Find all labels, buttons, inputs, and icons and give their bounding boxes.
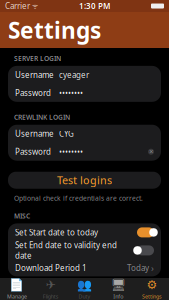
button[interactable]: Info bbox=[101, 278, 135, 300]
staticText: › bbox=[149, 262, 154, 274]
staticText: Flights bbox=[43, 293, 59, 300]
staticText: Settings bbox=[142, 293, 162, 300]
button[interactable]: Username bbox=[8, 125, 161, 143]
staticText: MISC bbox=[14, 212, 30, 220]
staticText: CREWLINK LOGIN bbox=[14, 113, 70, 122]
staticText: ᯤ bbox=[30, 2, 38, 10]
staticText: CYG bbox=[59, 128, 74, 139]
staticText: Username bbox=[15, 69, 54, 80]
staticText: 👥 bbox=[77, 278, 92, 292]
staticText: •••••••• bbox=[59, 146, 83, 157]
staticText: Today bbox=[127, 263, 149, 273]
staticText: ✈ bbox=[46, 278, 56, 292]
staticText: 🖥 bbox=[111, 278, 126, 292]
staticText: Test logins bbox=[57, 173, 112, 187]
button[interactable]: Test logins bbox=[8, 172, 161, 189]
button[interactable]: Set End date to validity end date bbox=[8, 241, 161, 259]
button[interactable]: Duty bbox=[68, 278, 101, 300]
staticText: 1:30 PM bbox=[79, 1, 110, 11]
staticText: Info bbox=[113, 293, 123, 300]
staticText: Settings bbox=[8, 15, 101, 45]
staticText: •••••••• bbox=[59, 87, 83, 98]
button[interactable]: Manage bbox=[0, 278, 34, 300]
staticText: ⚙ bbox=[147, 278, 158, 292]
staticText: Carrier bbox=[5, 1, 30, 11]
button[interactable]: Password bbox=[8, 143, 161, 161]
button[interactable]: Settings bbox=[135, 278, 169, 300]
staticText: Username bbox=[15, 128, 54, 139]
button[interactable]: Download Period 1 bbox=[8, 259, 161, 276]
staticText: 📄 bbox=[9, 278, 24, 292]
staticText: Password bbox=[15, 87, 51, 98]
staticText: Download Period 1 bbox=[15, 263, 87, 273]
staticText: cyeager bbox=[59, 69, 89, 80]
staticText: Set End date to validity end date bbox=[15, 240, 117, 261]
staticText: Duty bbox=[78, 293, 90, 300]
staticText: Optional check if credentials are correc… bbox=[14, 194, 143, 203]
staticText: ✕ bbox=[149, 149, 153, 155]
staticText: Set Start date to today bbox=[15, 227, 98, 238]
button[interactable]: Flights bbox=[34, 278, 68, 300]
button[interactable]: Set Start date to today bbox=[8, 223, 161, 241]
staticText: Manage bbox=[7, 293, 27, 300]
staticText: Password bbox=[15, 146, 51, 157]
button[interactable]: Password bbox=[8, 84, 161, 102]
staticText: SERVER LOGIN bbox=[14, 54, 61, 63]
button[interactable]: Username bbox=[8, 66, 161, 84]
